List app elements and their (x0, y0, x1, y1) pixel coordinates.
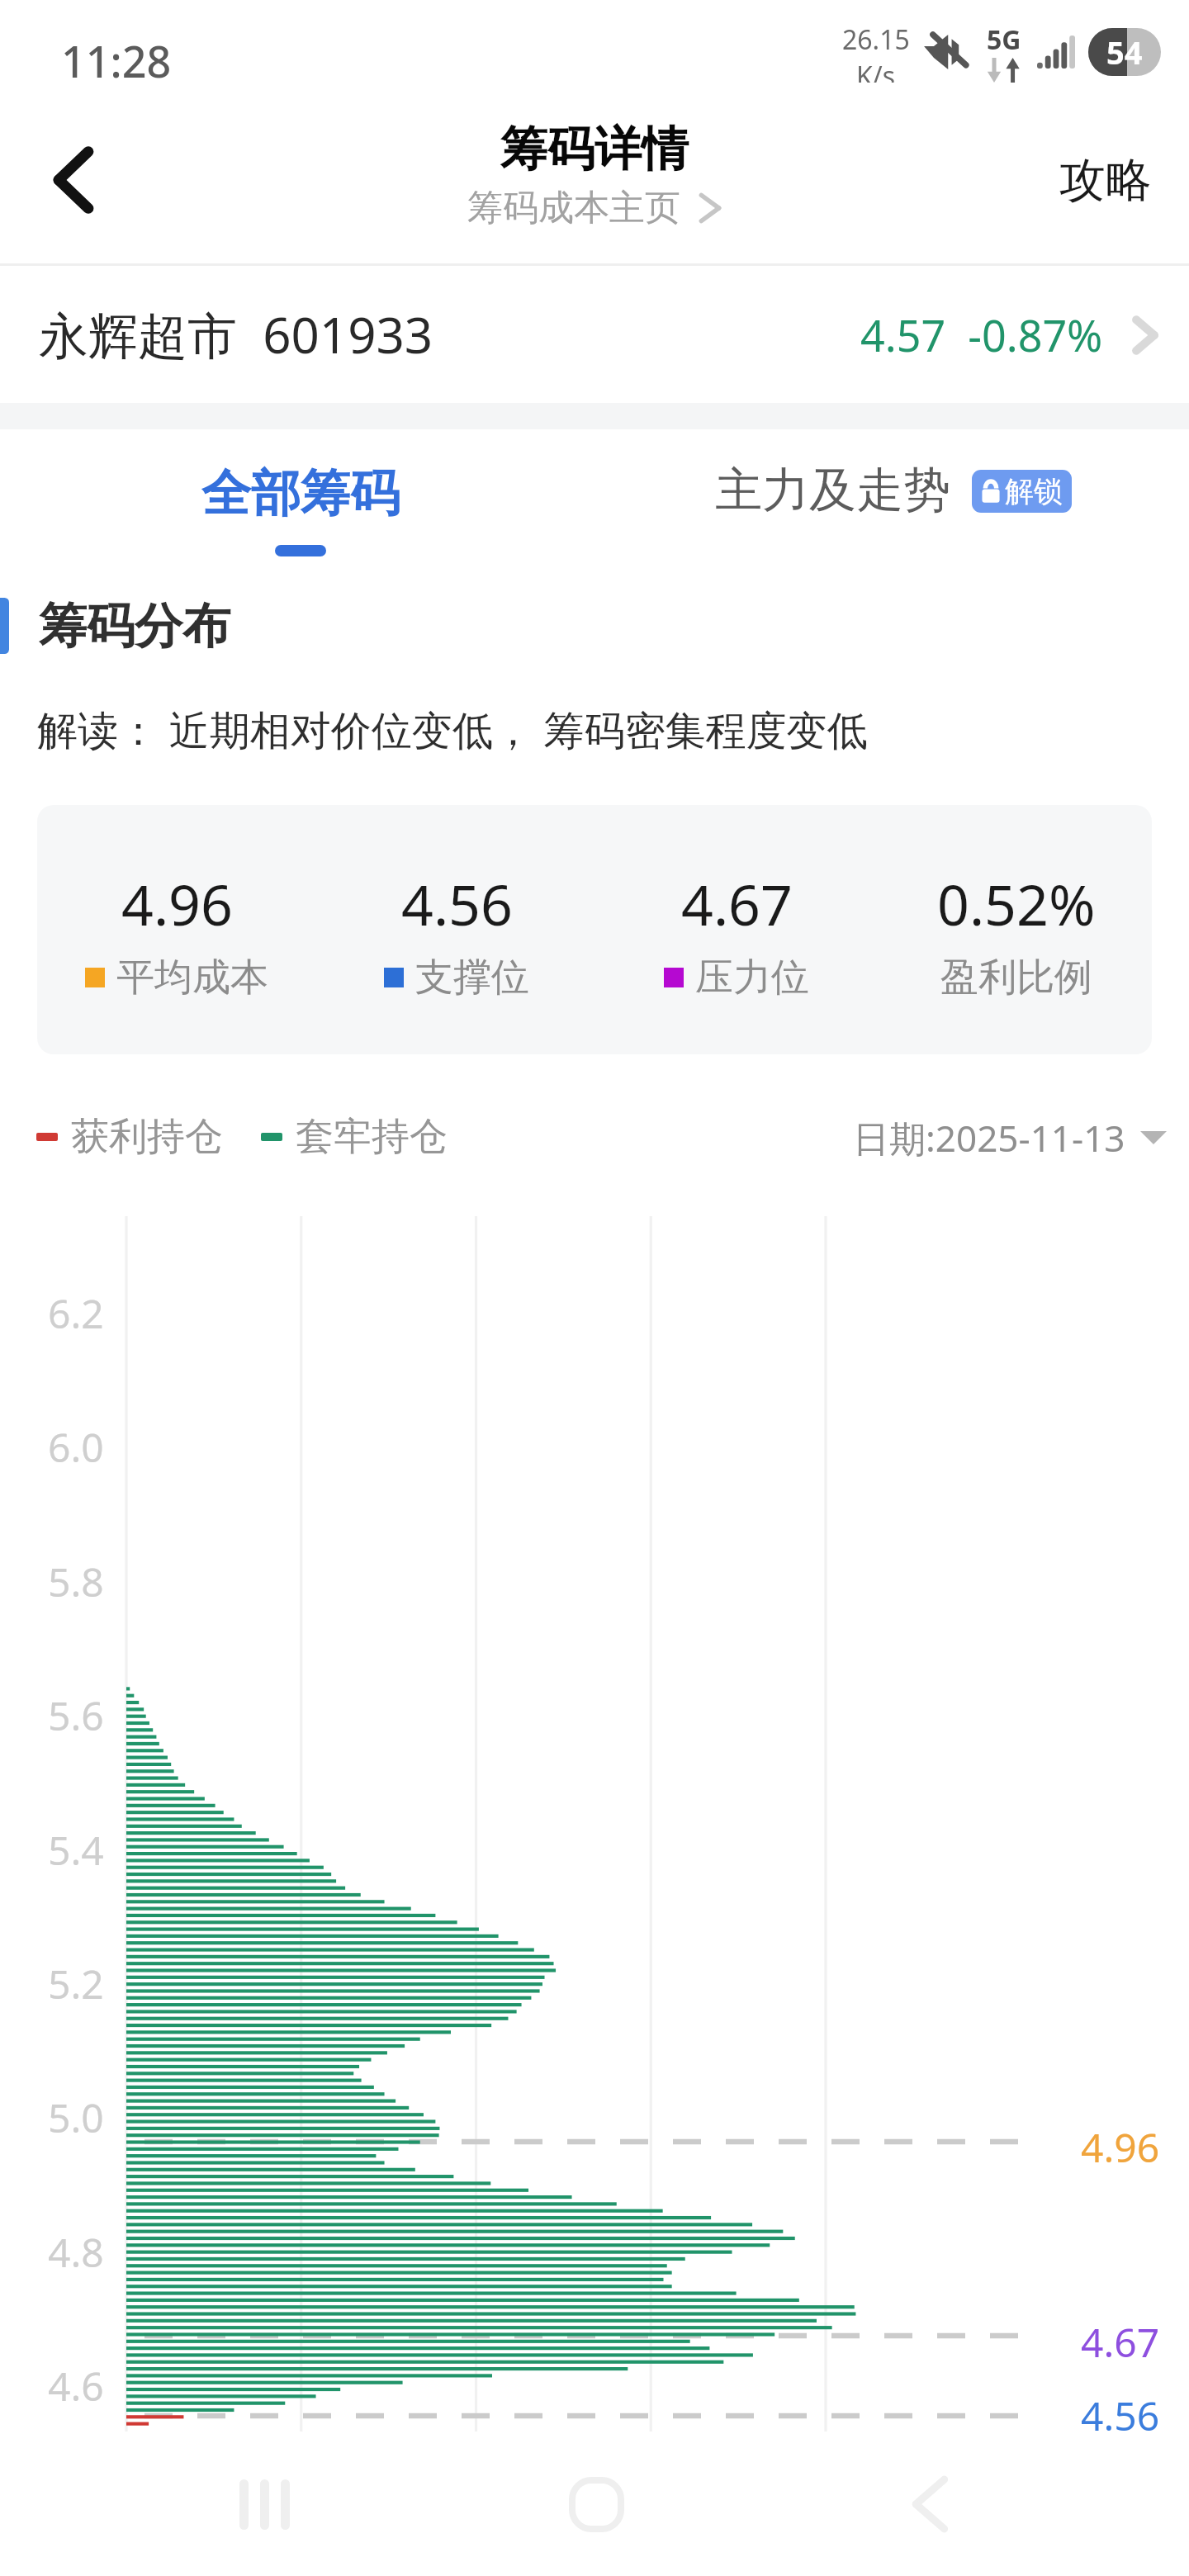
staticText: 筹码详情 (500, 120, 689, 179)
staticText: 4.96 (1081, 2120, 1160, 2174)
staticText: 5.2 (48, 1957, 104, 2010)
staticText: 4.8 (48, 2225, 104, 2279)
staticText: 攻略 (1059, 151, 1152, 210)
staticText: 5.8 (48, 1555, 104, 1608)
staticText: 11:28 (61, 31, 172, 90)
staticText: 筹码分布 (39, 596, 230, 656)
staticText: 获利持仓 (71, 1113, 223, 1161)
staticText: 盈利比例 (940, 954, 1092, 1002)
staticText: 主力及走势 (715, 461, 950, 520)
staticText: 4.56 (1081, 2389, 1160, 2442)
staticText: 5.6 (48, 1688, 104, 1742)
staticText: 6.2 (48, 1286, 104, 1340)
staticText: 套牢持仓 (296, 1113, 448, 1161)
staticText: 5.4 (48, 1823, 104, 1877)
button[interactable]: 攻略 (1043, 140, 1168, 220)
staticText: 解锁 (1005, 473, 1063, 509)
staticText: 26.15 (842, 21, 910, 58)
button[interactable]: 全部筹码 (201, 462, 400, 556)
staticText: 永辉超市 601933 (39, 301, 433, 368)
staticText: 4.96 (121, 865, 233, 942)
staticText: K/s (856, 58, 896, 83)
staticText: 54 (1106, 31, 1143, 73)
button[interactable]: Back (880, 2455, 979, 2554)
staticText: 4.57 -0.87% (860, 305, 1103, 364)
staticText: 日期:2025-11-13 (853, 1113, 1125, 1163)
button[interactable]: 日期:2025-11-13 (853, 1113, 1167, 1163)
button[interactable]: Recent apps (215, 2455, 314, 2554)
button[interactable]: 永辉超市 601933 (0, 266, 1189, 403)
staticText: 6.0 (48, 1420, 104, 1474)
staticText: 压力位 (695, 954, 809, 1002)
staticText: 5.0 (48, 2091, 104, 2144)
staticText: 全部筹码 (201, 462, 400, 525)
staticText: 解读： 近期相对价位变低， 筹码密集程度变低 (37, 702, 868, 757)
staticText: 平均成本 (116, 954, 268, 1002)
staticText: 0.52% (937, 865, 1096, 942)
button[interactable]: Back (36, 142, 111, 218)
staticText: 4.67 (681, 865, 793, 942)
staticText: 4.6 (48, 2359, 104, 2413)
staticText: 支撑位 (415, 954, 529, 1002)
button[interactable]: 主力及走势 (715, 461, 1072, 520)
staticText: 4.67 (1081, 2315, 1160, 2369)
button[interactable]: 筹码成本主页 (467, 186, 722, 230)
button[interactable]: Home (547, 2455, 646, 2554)
staticText: 4.56 (401, 865, 513, 942)
staticText: 筹码成本主页 (467, 186, 680, 230)
staticText: 5G (987, 21, 1021, 58)
